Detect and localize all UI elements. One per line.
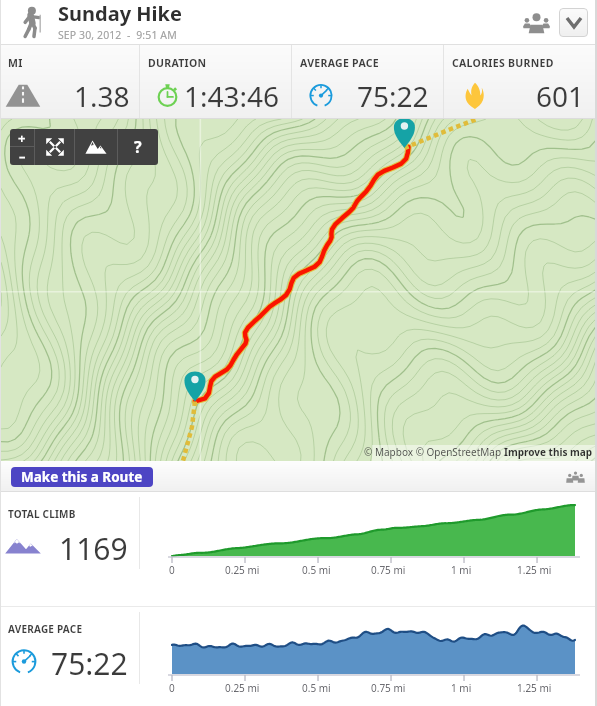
staticText: 1 mi bbox=[451, 681, 472, 695]
staticText: 0 bbox=[169, 563, 175, 577]
staticText: 75:22 bbox=[51, 643, 128, 679]
button[interactable]: Expand details bbox=[559, 8, 588, 37]
staticText: 0.25 mi bbox=[225, 563, 260, 577]
staticText: TOTAL CLIMB bbox=[8, 507, 76, 521]
staticText: 1 mi bbox=[451, 563, 472, 577]
button[interactable]: Group members bbox=[564, 466, 586, 488]
staticText: DURATION bbox=[148, 56, 207, 70]
staticText: AVERAGE PACE bbox=[8, 622, 83, 636]
staticText: 1.25 mi bbox=[517, 681, 552, 695]
staticText: 0.75 mi bbox=[371, 563, 406, 577]
button[interactable]: Friends bbox=[517, 4, 555, 42]
staticText: 75:22 bbox=[357, 77, 429, 113]
staticText: 0 bbox=[169, 681, 175, 695]
staticText: 1169 bbox=[59, 528, 128, 564]
staticText: MI bbox=[8, 56, 23, 70]
staticText: 0.5 mi bbox=[302, 681, 331, 695]
staticText: Improve this map bbox=[504, 445, 593, 459]
button[interactable]: Terrain layer bbox=[75, 129, 117, 165]
staticText: © Mapbox © OpenStreetMap bbox=[364, 445, 504, 459]
staticText: CALORIES BURNED bbox=[452, 56, 554, 70]
staticText: 601 bbox=[536, 77, 585, 113]
staticText: Make this a Route bbox=[21, 468, 143, 486]
staticText: + bbox=[18, 129, 26, 146]
staticText: AVERAGE PACE bbox=[300, 56, 379, 70]
staticText: SEP 30, 2012 - 9:51 AM bbox=[58, 28, 177, 42]
staticText: 0.25 mi bbox=[225, 681, 260, 695]
button[interactable]: Help bbox=[118, 129, 158, 165]
staticText: 0.5 mi bbox=[302, 563, 331, 577]
staticText: 1.38 bbox=[74, 77, 130, 113]
button[interactable]: Zoom out bbox=[10, 147, 34, 165]
staticText: 1:43:46 bbox=[184, 77, 280, 113]
button[interactable]: Make this a Route bbox=[11, 467, 153, 487]
staticText: Sunday Hike bbox=[58, 0, 182, 27]
staticText: – bbox=[19, 147, 26, 165]
staticText: ? bbox=[134, 136, 142, 158]
button[interactable]: Zoom in bbox=[10, 129, 34, 146]
staticText: 1.25 mi bbox=[517, 563, 552, 577]
staticText: 0.75 mi bbox=[371, 681, 406, 695]
button[interactable]: Fullscreen bbox=[35, 129, 74, 165]
